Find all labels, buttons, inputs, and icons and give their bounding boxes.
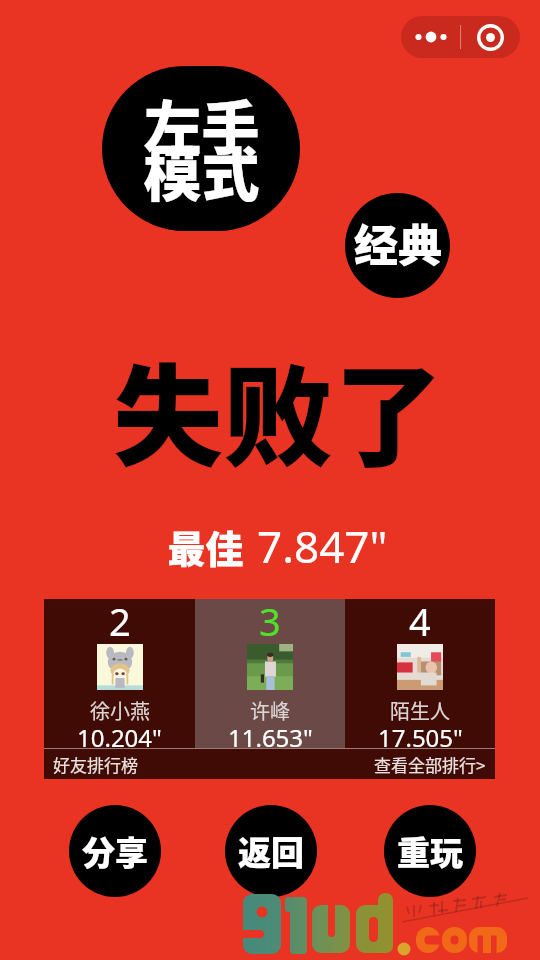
staticText: 失败了	[113, 329, 443, 488]
staticText: 许峰	[250, 696, 290, 725]
staticText: 左手	[143, 82, 260, 166]
button[interactable]: More	[401, 16, 460, 58]
button[interactable]: 4	[345, 599, 495, 748]
staticText: 2	[109, 595, 131, 647]
staticText: 分享	[82, 827, 148, 875]
staticText: 最佳	[167, 519, 244, 574]
button[interactable]: 3	[195, 599, 345, 748]
button[interactable]: 返回	[225, 805, 317, 897]
staticText: 陌生人	[390, 696, 450, 725]
button[interactable]: 查看全部排行>	[374, 752, 486, 777]
staticText: 返回	[238, 827, 304, 875]
staticText: 4	[409, 595, 431, 647]
staticText: 经典	[354, 211, 442, 275]
button[interactable]: 好友排行榜	[53, 752, 138, 777]
button[interactable]: 重玩	[384, 805, 476, 897]
staticText: 模式	[143, 129, 260, 213]
staticText: 徐小燕	[90, 696, 150, 725]
staticText: 7.847"	[257, 516, 388, 576]
button[interactable]: 左手	[102, 66, 300, 231]
button[interactable]: 经典	[345, 193, 450, 298]
button[interactable]: Close	[461, 16, 520, 58]
staticText: 重玩	[397, 827, 463, 875]
button[interactable]: 分享	[69, 805, 161, 897]
staticText: 查看全部排行>	[374, 752, 486, 777]
staticText: 10.204"	[77, 721, 162, 754]
staticText: 3	[259, 595, 281, 647]
staticText: 好友排行榜	[53, 752, 138, 777]
staticText: 11.653"	[228, 721, 313, 754]
button[interactable]: 2	[44, 599, 195, 748]
staticText: 17.505"	[378, 721, 463, 754]
